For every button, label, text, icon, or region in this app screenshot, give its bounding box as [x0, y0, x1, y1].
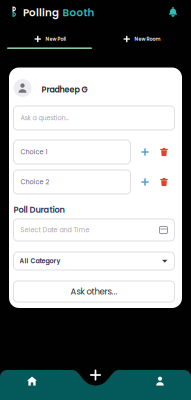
- button[interactable]: All Category: [13, 252, 174, 270]
- button[interactable]: Add choice: [137, 170, 153, 194]
- button[interactable]: Ask others...: [13, 281, 174, 302]
- button[interactable]: Add choice: [137, 140, 153, 164]
- staticText: New Room: [134, 36, 160, 42]
- button[interactable]: Delete choice: [156, 170, 172, 194]
- staticText: Choice 2: [20, 177, 49, 186]
- staticText: Ask a question...: [20, 113, 68, 122]
- button[interactable]: New Poll: [6, 30, 94, 48]
- button[interactable]: Home: [17, 370, 47, 392]
- staticText: New Poll: [45, 36, 65, 42]
- button[interactable]: Notifications: [163, 2, 183, 22]
- staticText: Pradheep G: [41, 84, 87, 95]
- staticText: Poll Duration: [13, 204, 64, 216]
- staticText: Choice 1: [20, 147, 47, 156]
- staticText: Booth: [62, 5, 94, 20]
- staticText: All Category: [19, 256, 60, 265]
- button[interactable]: Create: [80, 364, 110, 386]
- button[interactable]: New Room: [96, 30, 188, 48]
- staticText: Polling: [23, 5, 59, 20]
- staticText: Ask others...: [70, 285, 117, 297]
- button[interactable]: Delete choice: [156, 140, 172, 164]
- staticText: Select Date and Time: [20, 225, 89, 234]
- button[interactable]: Profile: [145, 370, 175, 392]
